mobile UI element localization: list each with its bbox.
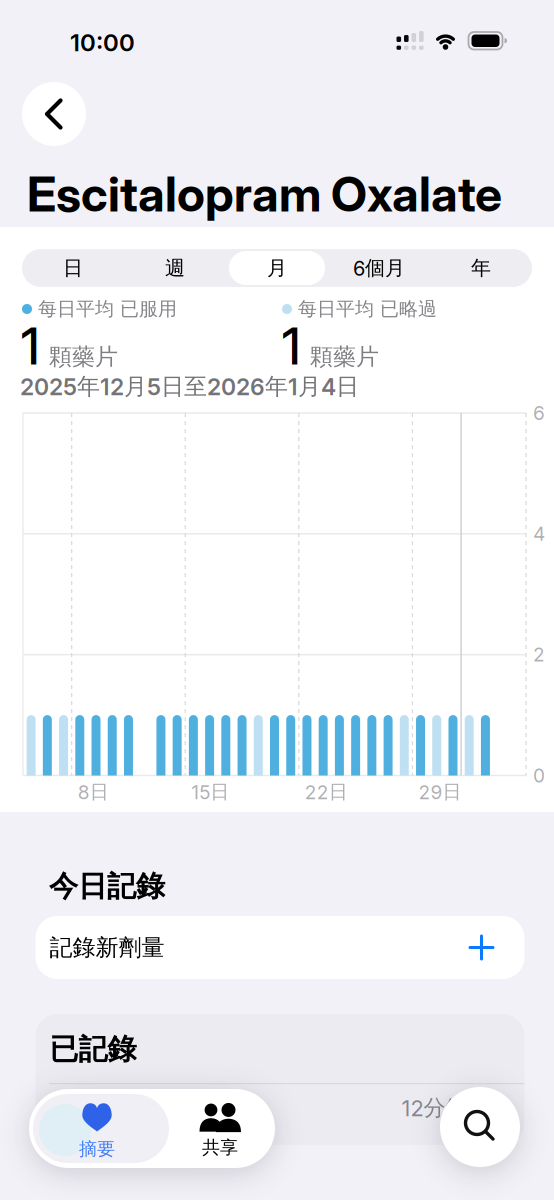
staticText: 2 (533, 643, 545, 666)
staticText: 6 (533, 401, 545, 424)
button[interactable]: 共享 (165, 1089, 275, 1168)
staticText: 12分鐘前 (401, 1094, 489, 1122)
button[interactable]: 摘要 (29, 1089, 165, 1168)
staticText: 日 (63, 255, 83, 281)
button[interactable]: Back (22, 82, 86, 146)
staticText: 週 (165, 255, 185, 281)
staticText: 4 (533, 522, 545, 545)
staticText: 今日記錄 (49, 868, 165, 904)
staticText: 顆藥片 (49, 342, 118, 371)
staticText: 已記錄 (49, 1031, 136, 1067)
button[interactable]: 記錄新劑量 (35, 916, 524, 979)
button[interactable]: 日 (22, 249, 124, 287)
staticText: 8日 (78, 780, 109, 804)
staticText: 月 (267, 255, 287, 281)
staticText: 記錄新劑量 (49, 933, 164, 962)
staticText: 6個月 (353, 255, 405, 281)
staticText: 顆藥片 (310, 342, 379, 371)
button[interactable]: 年 (430, 249, 532, 287)
button[interactable]: 週 (124, 249, 226, 287)
button[interactable]: 月 (226, 249, 328, 287)
staticText: 年 (471, 255, 491, 281)
staticText: 0 (533, 764, 545, 787)
staticText: 1 (21, 316, 40, 376)
staticText: 2025年12月5日至2026年1月4日 (20, 372, 359, 401)
staticText: Escitalopram Oxalate (27, 165, 502, 223)
staticText: 每日平均 已服用 (38, 297, 177, 321)
staticText: 共享 (202, 1136, 238, 1159)
staticText: 22日 (305, 780, 348, 804)
staticText: 每日平均 已略過 (298, 297, 437, 321)
staticText: 1 (282, 316, 301, 376)
staticText: 10:00 (70, 28, 135, 57)
staticText: 29日 (418, 780, 461, 804)
staticText: 摘要 (79, 1138, 115, 1160)
button[interactable]: 搜尋 (440, 1087, 520, 1167)
button[interactable]: 6個月 (328, 249, 430, 287)
staticText: 15日 (191, 780, 229, 804)
